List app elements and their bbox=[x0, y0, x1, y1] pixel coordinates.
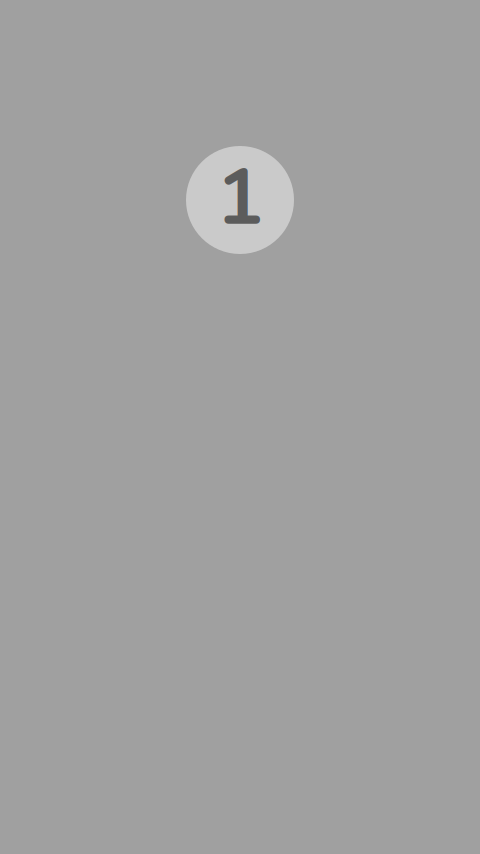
staticText: 1 bbox=[216, 144, 263, 251]
button[interactable]: 1 bbox=[186, 146, 294, 254]
